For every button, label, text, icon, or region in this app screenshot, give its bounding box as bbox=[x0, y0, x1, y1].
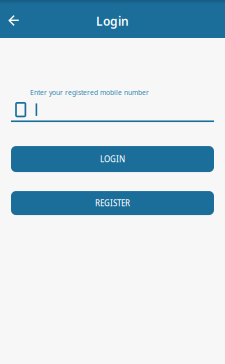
button[interactable]: Mobile number bbox=[11, 103, 214, 122]
staticText: REGISTER bbox=[95, 198, 130, 208]
staticText: Login bbox=[96, 13, 129, 29]
button[interactable]: LOGIN bbox=[11, 146, 214, 172]
staticText: Enter your registered mobile number bbox=[30, 88, 149, 97]
staticText: LOGIN bbox=[100, 154, 125, 164]
button[interactable]: REGISTER bbox=[11, 191, 214, 215]
button[interactable]: Back bbox=[3, 1, 24, 37]
